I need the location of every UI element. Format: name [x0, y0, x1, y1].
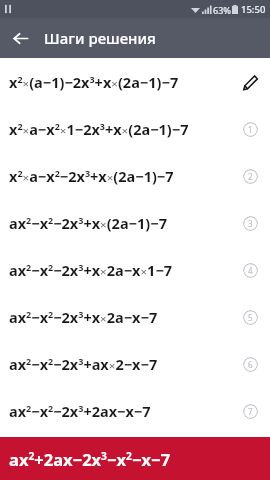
- button[interactable]: x2×a−x2−2x3+x×(2a−1)−7: [0, 152, 270, 199]
- button[interactable]: Step 7: [233, 394, 267, 428]
- button[interactable]: Step 4: [233, 253, 267, 287]
- staticText: 2: [248, 171, 253, 182]
- button[interactable]: Step 6: [233, 347, 267, 381]
- button[interactable]: Step 5: [233, 300, 267, 334]
- button[interactable]: Back: [0, 18, 40, 58]
- staticText: 63%: [213, 4, 231, 16]
- button[interactable]: ax2−x2−2x3+x×(2a−1)−7: [0, 199, 270, 246]
- staticText: x2×(a−1)−2x3+x×(2a−1)−7: [9, 72, 179, 92]
- button[interactable]: x2×(a−1)−2x3+x×(2a−1)−7: [0, 58, 270, 105]
- button[interactable]: Edit expression: [233, 65, 267, 99]
- staticText: 7: [248, 406, 253, 417]
- button[interactable]: ax2−x2−2x3+x×2a−x−7: [0, 293, 270, 340]
- staticText: ax2−x2−2x3+x×2a−x−7: [9, 307, 158, 327]
- staticText: 6: [248, 359, 253, 370]
- button[interactable]: Step 1: [233, 112, 267, 146]
- staticText: x2×a−x2×1−2x3+x×(2a−1)−7: [9, 119, 189, 139]
- button[interactable]: ax2−x2−2x3+x×2a−x×1−7: [0, 246, 270, 293]
- button[interactable]: x2×a−x2×1−2x3+x×(2a−1)−7: [0, 105, 270, 152]
- staticText: ax2+2ax−2x3−x2−x−7: [9, 448, 171, 470]
- staticText: 3: [248, 218, 253, 229]
- button[interactable]: ax2−x2−2x3+ax×2−x−7: [0, 340, 270, 387]
- staticText: 1: [248, 124, 253, 135]
- button[interactable]: Step 2: [233, 159, 267, 193]
- staticText: x2×a−x2−2x3+x×(2a−1)−7: [9, 166, 174, 186]
- staticText: 15:50: [241, 3, 266, 16]
- button[interactable]: ax2+2ax−2x3−x2−x−7: [0, 437, 270, 480]
- staticText: ax2−x2−2x3+ax×2−x−7: [9, 354, 158, 374]
- staticText: 4: [248, 265, 253, 276]
- staticText: Шаги решения: [44, 28, 156, 48]
- staticText: ax2−x2−2x3+x×(2a−1)−7: [9, 213, 167, 233]
- staticText: 5: [248, 312, 253, 323]
- button[interactable]: Step 3: [233, 206, 267, 240]
- staticText: ax2−x2−2x3+2ax−x−7: [9, 401, 151, 421]
- staticText: ax2−x2−2x3+x×2a−x×1−7: [9, 260, 173, 280]
- button[interactable]: ax2−x2−2x3+2ax−x−7: [0, 387, 270, 434]
